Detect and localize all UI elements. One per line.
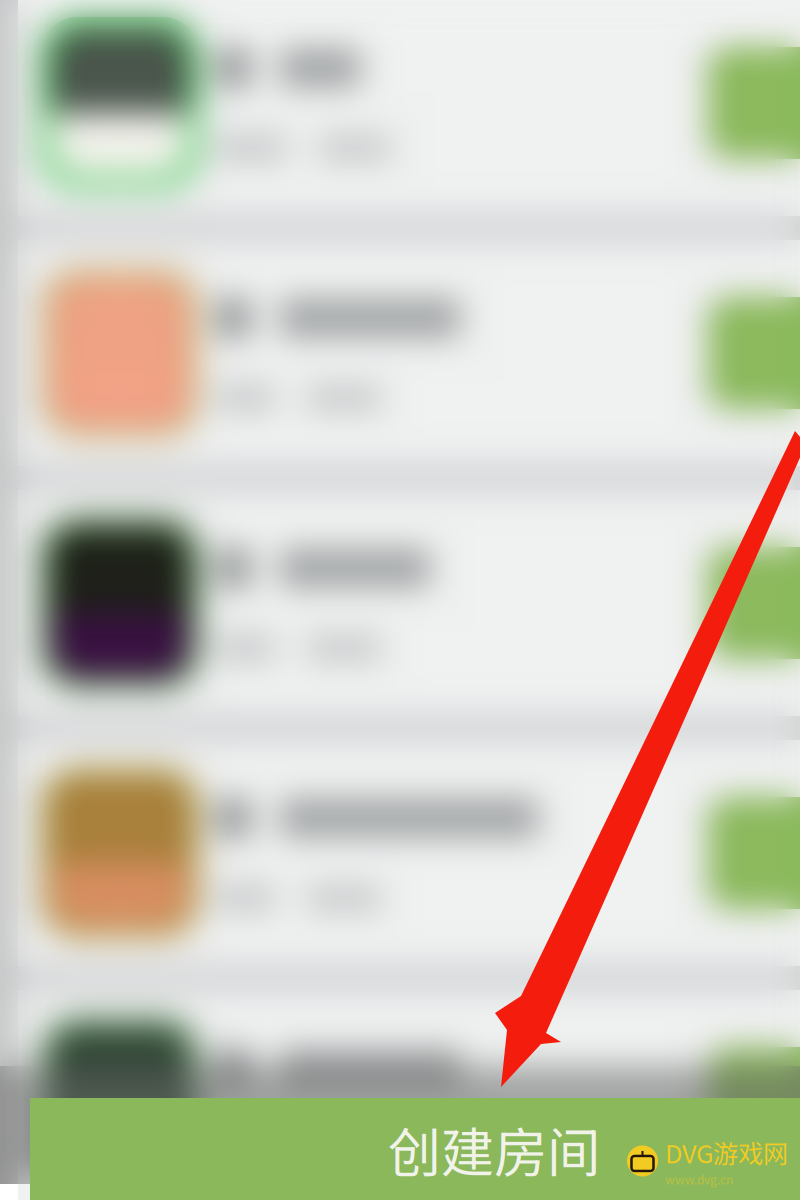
staticText: 创建房间 — [388, 1110, 600, 1188]
staticText: DVG游戏网 — [665, 1134, 788, 1171]
button[interactable] — [18, 0, 800, 216]
button[interactable] — [18, 740, 800, 966]
button[interactable] — [18, 490, 800, 716]
button[interactable] — [18, 990, 800, 1200]
staticText: www.dvg.cn — [665, 1171, 733, 1188]
button[interactable]: 创建房间 — [30, 1098, 800, 1200]
button[interactable] — [18, 240, 800, 466]
